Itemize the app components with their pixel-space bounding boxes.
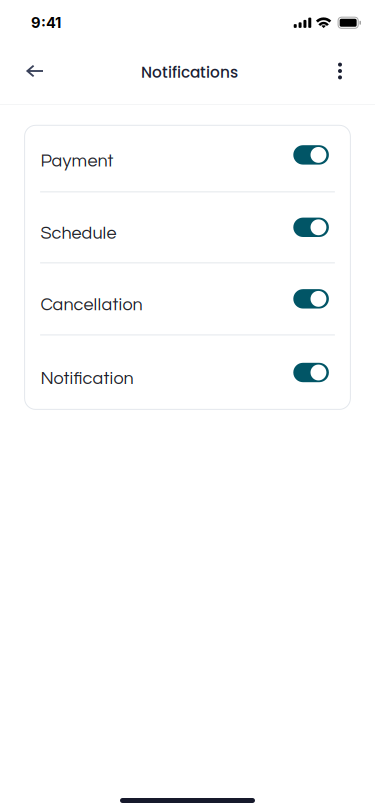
button[interactable]: Schedule (25, 192, 350, 262)
button[interactable]: Payment (25, 125, 350, 191)
staticText: Schedule (41, 224, 117, 242)
staticText: Notifications (141, 62, 238, 83)
button[interactable]: More options (318, 49, 362, 93)
staticText: Cancellation (41, 296, 143, 314)
button[interactable]: Notification (25, 336, 350, 409)
button[interactable]: Back (13, 49, 57, 93)
staticText: Payment (41, 152, 114, 170)
button[interactable]: Cancellation (25, 263, 350, 334)
staticText: 9:41 (31, 14, 61, 32)
staticText: Notification (41, 369, 134, 388)
